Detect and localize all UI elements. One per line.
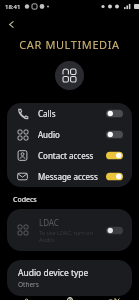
staticText: Audio	[38, 129, 106, 140]
staticText: To use LDAC, turn on Audio	[39, 229, 106, 243]
button[interactable]: LDAC	[7, 209, 132, 251]
button[interactable]: Unpair	[93, 296, 137, 300]
button[interactable]: Audio device type	[7, 260, 132, 296]
button[interactable]: Audio	[7, 124, 132, 145]
button[interactable]: Contact access	[7, 145, 132, 166]
staticText: CAR MULTIMEDIA	[0, 37, 139, 52]
button[interactable]: Connect	[48, 296, 92, 300]
staticText: Contact access	[38, 150, 106, 161]
staticText: Calls	[38, 108, 106, 119]
staticText: Codecs	[13, 195, 37, 205]
staticText: LDAC	[39, 217, 59, 228]
staticText: Others	[18, 280, 39, 289]
button[interactable]: Calls	[7, 103, 132, 124]
staticText: Audio device type	[18, 267, 89, 279]
button[interactable]: Back	[0, 13, 22, 35]
staticText: 18:41	[5, 3, 21, 11]
button[interactable]: Device	[55, 61, 84, 90]
staticText: Message access	[38, 171, 106, 182]
button[interactable]: Rename	[2, 296, 46, 300]
button[interactable]: Message access	[7, 166, 132, 187]
